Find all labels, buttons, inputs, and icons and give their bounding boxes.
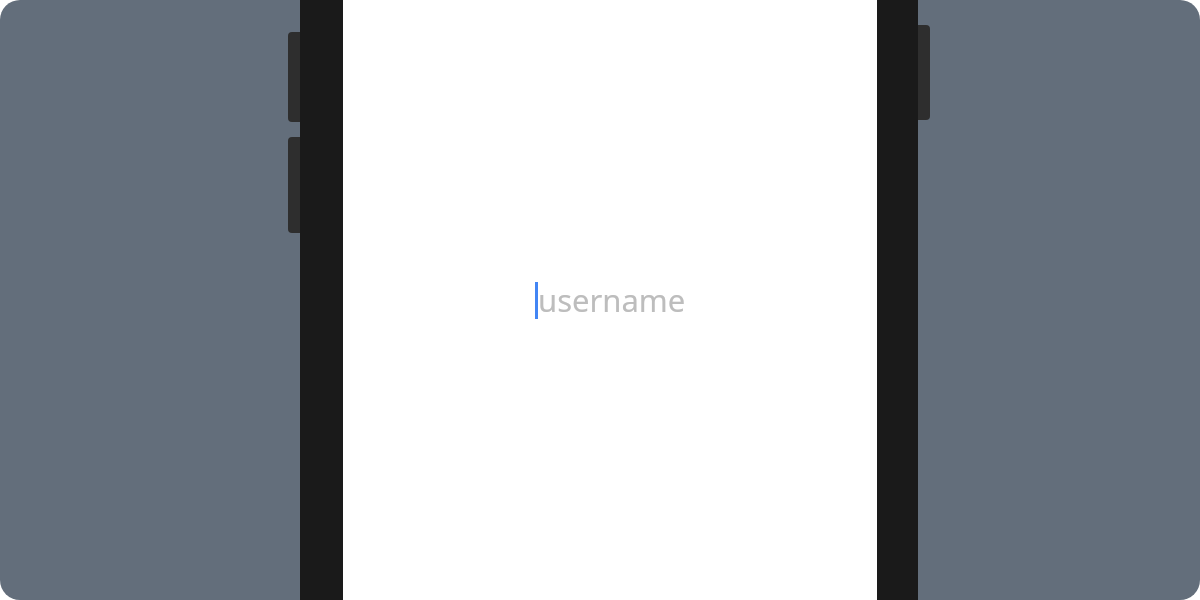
button[interactable]: username bbox=[535, 278, 686, 322]
staticText: username bbox=[538, 279, 686, 321]
button[interactable]: Power bbox=[915, 25, 930, 120]
button[interactable]: Volume down bbox=[288, 137, 304, 233]
button[interactable]: Volume up bbox=[288, 32, 304, 122]
